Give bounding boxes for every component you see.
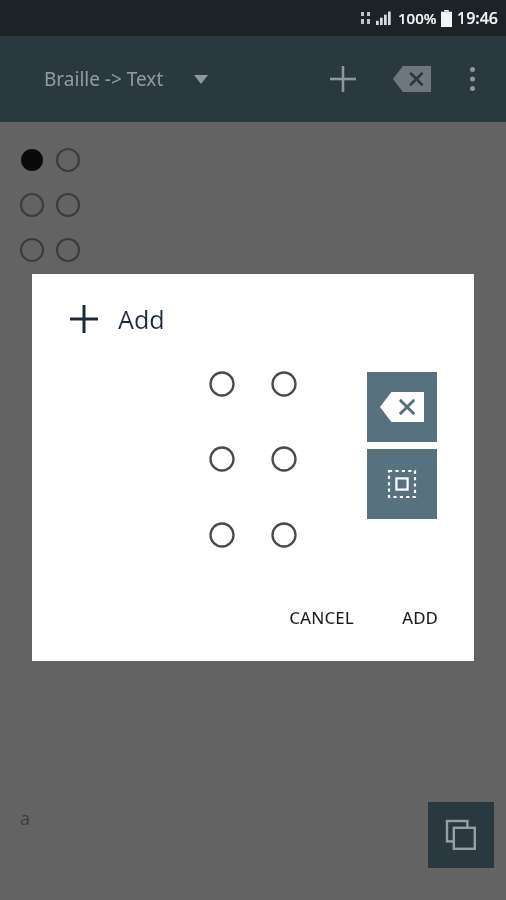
- button[interactable]: CANCEL: [275, 596, 368, 639]
- button[interactable]: Select all: [367, 449, 437, 519]
- staticText: a: [20, 806, 31, 831]
- button[interactable]: More options: [450, 57, 494, 101]
- staticText: 19:46: [457, 7, 498, 29]
- staticText: 100%: [398, 8, 437, 28]
- staticText: ADD: [402, 606, 438, 629]
- staticText: Add: [118, 302, 165, 336]
- button[interactable]: Braille dot grid: [210, 370, 306, 546]
- staticText: CANCEL: [289, 606, 354, 629]
- button[interactable]: Backspace: [367, 372, 437, 442]
- button[interactable]: Copy: [428, 802, 494, 868]
- button[interactable]: Add: [320, 56, 366, 102]
- button[interactable]: Braille -> Text: [44, 66, 208, 92]
- staticText: Braille -> Text: [44, 66, 164, 92]
- button[interactable]: Backspace: [388, 55, 436, 103]
- button[interactable]: ADD: [388, 596, 452, 639]
